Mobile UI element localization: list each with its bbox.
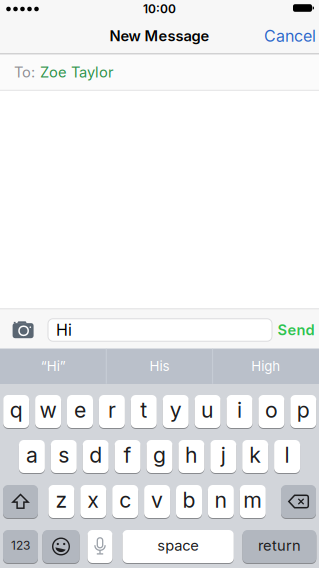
button[interactable]: r xyxy=(99,395,125,428)
button[interactable]: g xyxy=(146,440,172,473)
button[interactable]: h xyxy=(178,440,204,473)
button[interactable]: return xyxy=(242,530,316,563)
button[interactable]: u xyxy=(195,395,221,428)
staticText: v xyxy=(151,487,163,513)
staticText: h xyxy=(185,442,198,468)
button[interactable]: d xyxy=(83,440,109,473)
staticText: s xyxy=(58,442,69,468)
staticText: u xyxy=(201,397,214,423)
button[interactable]: “Hi” xyxy=(1,349,106,384)
button[interactable]: Send xyxy=(277,321,314,339)
staticText: New Message xyxy=(109,27,209,45)
staticText: i xyxy=(237,397,242,423)
button[interactable]: Emoji xyxy=(42,530,79,563)
staticText: j xyxy=(221,442,226,468)
button[interactable]: o xyxy=(258,395,284,428)
staticText: q xyxy=(10,397,23,423)
staticText: b xyxy=(182,487,195,513)
button[interactable]: space xyxy=(122,530,234,563)
button[interactable]: w xyxy=(35,395,61,428)
button[interactable]: Cancel xyxy=(264,27,316,45)
button[interactable]: s xyxy=(51,440,77,473)
button[interactable]: l xyxy=(274,440,300,473)
button[interactable]: i xyxy=(226,395,252,428)
staticText: f xyxy=(124,442,132,468)
staticText: x xyxy=(87,487,99,513)
staticText: Hi xyxy=(56,321,72,339)
button[interactable]: c xyxy=(112,485,138,518)
button[interactable]: v xyxy=(144,485,170,518)
staticText: Zoe Taylor xyxy=(40,63,114,81)
staticText: d xyxy=(89,442,102,468)
button[interactable]: Numbers xyxy=(3,530,38,563)
staticText: To: xyxy=(14,63,35,81)
button[interactable]: Shift xyxy=(3,485,38,518)
staticText: o xyxy=(265,397,278,423)
staticText: e xyxy=(74,397,86,423)
button[interactable]: Delete xyxy=(281,485,316,518)
staticText: g xyxy=(153,442,166,468)
button[interactable]: x xyxy=(80,485,106,518)
button[interactable]: b xyxy=(176,485,202,518)
staticText: p xyxy=(297,397,310,423)
staticText: z xyxy=(55,487,67,513)
button[interactable]: His xyxy=(107,349,212,384)
staticText: His xyxy=(149,358,169,374)
staticText: 123 xyxy=(11,538,30,553)
button[interactable]: m xyxy=(240,485,266,518)
button[interactable]: e xyxy=(67,395,93,428)
staticText: r xyxy=(108,397,116,423)
staticText: a xyxy=(26,442,38,468)
button[interactable]: a xyxy=(19,440,45,473)
button[interactable]: j xyxy=(210,440,236,473)
staticText: “Hi” xyxy=(41,358,66,374)
button[interactable]: k xyxy=(242,440,268,473)
staticText: Send xyxy=(277,321,314,339)
button[interactable]: z xyxy=(48,485,74,518)
staticText: n xyxy=(214,487,227,513)
staticText: High xyxy=(251,358,280,374)
button[interactable]: t xyxy=(131,395,157,428)
staticText: 10:00 xyxy=(143,2,176,16)
button[interactable]: f xyxy=(115,440,141,473)
staticText: Cancel xyxy=(264,27,316,45)
staticText: space xyxy=(157,537,199,554)
staticText: w xyxy=(40,397,57,423)
button[interactable]: p xyxy=(290,395,316,428)
button[interactable]: High xyxy=(213,349,318,384)
staticText: return xyxy=(258,537,301,554)
staticText: t xyxy=(140,397,147,423)
button[interactable]: y xyxy=(163,395,189,428)
button[interactable]: n xyxy=(208,485,234,518)
staticText: l xyxy=(285,442,290,468)
staticText: k xyxy=(249,442,261,468)
staticText: m xyxy=(243,487,262,513)
button[interactable]: Camera xyxy=(13,321,34,338)
button[interactable]: q xyxy=(3,395,29,428)
staticText: y xyxy=(170,397,182,423)
staticText: c xyxy=(119,487,131,513)
button[interactable]: Dictation xyxy=(87,530,112,563)
